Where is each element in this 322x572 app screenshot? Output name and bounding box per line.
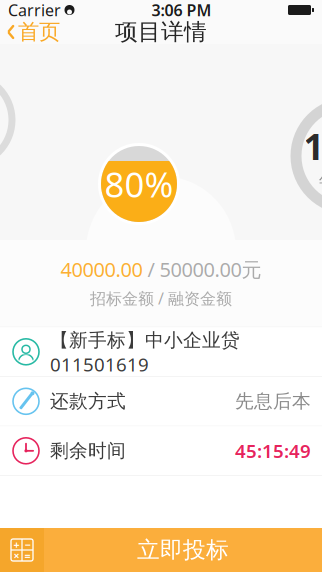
staticText: 先息后本 (235, 390, 311, 413)
button[interactable]: 收益计算器 (0, 528, 44, 572)
staticText: 年化收益 (319, 172, 322, 190)
staticText: 立即投标 (137, 536, 229, 564)
staticText: = (24, 548, 30, 563)
button[interactable]: 剩余时间 (0, 426, 322, 476)
staticText: 还款方式 (50, 390, 126, 413)
staticText: 45:15:49 (235, 438, 311, 463)
staticText: 剩余时间 (50, 439, 126, 462)
staticText: × (13, 548, 19, 563)
staticText: 项目详情 (115, 18, 207, 46)
staticText: 19.9 (303, 122, 322, 170)
button[interactable]: 还款方式 (0, 377, 322, 426)
staticText: 3:06 PM (151, 0, 211, 21)
staticText: 80% (104, 161, 173, 207)
button[interactable]: 首页 (0, 14, 60, 50)
staticText (59, 0, 65, 25)
staticText: 首页 (18, 19, 60, 45)
staticText: 招标金额 / 融资金额 (90, 288, 232, 309)
button[interactable]: 立即投标 (44, 528, 322, 572)
staticText: 40000.00 (60, 256, 142, 283)
staticText: + (13, 537, 19, 552)
staticText: − (24, 537, 30, 552)
staticText: Carrier (8, 0, 61, 21)
staticText: / 50000.00元 (142, 256, 261, 283)
staticText: 【新手标】中小企业贷 011501619 (50, 327, 240, 377)
button[interactable]: 【新手标】中小企业贷 011501619 (0, 327, 322, 377)
